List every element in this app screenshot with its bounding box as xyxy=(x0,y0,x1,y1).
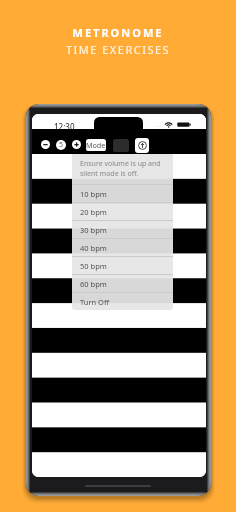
staticText: TIME EXERCISES xyxy=(0,42,236,57)
staticText: METRONOME xyxy=(0,25,236,40)
button[interactable]: Increase tempo xyxy=(72,140,81,149)
staticText: 30 bpm xyxy=(80,225,107,235)
staticText: Turn Off xyxy=(80,297,110,307)
staticText: Mode xyxy=(86,140,106,150)
button[interactable]: 10 bpm xyxy=(72,185,173,202)
button[interactable]: 5 xyxy=(56,140,66,150)
button[interactable]: 60 bpm xyxy=(72,275,173,292)
button[interactable]: Turn Off xyxy=(72,293,173,310)
button[interactable]: 30 bpm xyxy=(72,221,173,238)
button[interactable]: Mode xyxy=(86,139,106,151)
staticText: 10 bpm xyxy=(80,189,107,199)
button[interactable]: Share xyxy=(135,138,149,153)
staticText: 60 bpm xyxy=(80,279,107,289)
staticText: 40 bpm xyxy=(80,243,107,253)
staticText: 50 bpm xyxy=(80,261,107,271)
staticText: 12:30 xyxy=(54,121,75,132)
button[interactable]: Beat display xyxy=(113,139,129,152)
button[interactable]: 50 bpm xyxy=(72,257,173,274)
button[interactable]: Decrease tempo xyxy=(41,140,50,149)
button[interactable]: 40 bpm xyxy=(72,239,173,256)
staticText: 5 xyxy=(59,140,64,150)
staticText: 20 bpm xyxy=(80,207,107,217)
staticText: Ensure volume is up and silent mode is o… xyxy=(80,159,161,179)
button[interactable]: 20 bpm xyxy=(72,203,173,220)
